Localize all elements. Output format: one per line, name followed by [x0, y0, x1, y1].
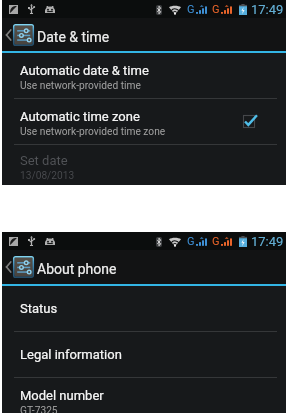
button[interactable]: Automatic date & time — [2, 53, 286, 98]
staticText: Set date — [20, 153, 68, 168]
staticText: About phone — [37, 261, 117, 277]
staticText: G — [212, 235, 220, 248]
staticText: Automatic date & time — [20, 63, 149, 78]
staticText: 17:49 — [251, 2, 284, 17]
staticText: G — [187, 235, 195, 248]
button[interactable]: Automatic time zone — [2, 99, 286, 144]
staticText: Status — [20, 301, 58, 316]
staticText: GT-7325 — [20, 405, 58, 413]
button[interactable]: Model number — [2, 378, 286, 413]
button[interactable]: Status — [2, 286, 286, 331]
staticText: 17:49 — [251, 234, 284, 249]
staticText: Legal information — [20, 347, 122, 362]
staticText: G — [212, 3, 220, 16]
staticText: G — [187, 3, 195, 16]
staticText: 13/08/2013 — [20, 170, 75, 182]
button[interactable]: Navigate up: Date & time — [2, 18, 286, 51]
staticText: Use network-provided time zone — [20, 126, 166, 138]
staticText: Date & time — [37, 29, 110, 45]
staticText: Automatic time zone — [20, 109, 140, 124]
button[interactable]: Navigate up: About phone — [2, 250, 286, 284]
staticText: Use network-provided time — [20, 80, 141, 92]
button[interactable]: Legal information — [2, 332, 286, 377]
button[interactable]: Set date — [2, 145, 286, 185]
staticText: Model number — [20, 388, 104, 403]
